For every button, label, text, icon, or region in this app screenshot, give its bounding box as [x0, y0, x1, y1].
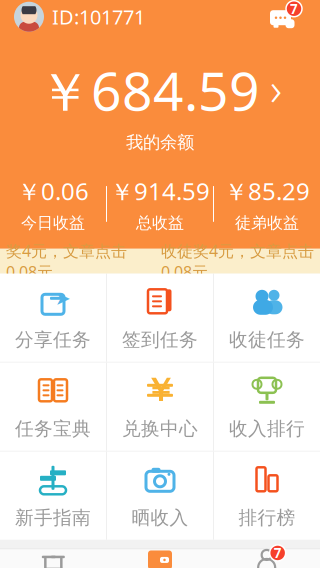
staticText: 总收益: [136, 213, 184, 233]
staticText: ￥: [144, 371, 176, 410]
button[interactable]: ￥85.29: [214, 165, 320, 243]
button[interactable]: 首页: [0, 549, 107, 568]
staticText: 收徒奖4元，文章点击0.08元: [161, 240, 314, 282]
staticText: 7: [290, 0, 298, 18]
button[interactable]: 排行榜: [214, 452, 320, 540]
staticText: 收徒任务: [229, 328, 305, 351]
staticText: ￥684.59: [38, 55, 260, 126]
staticText: ￥0.06: [17, 175, 89, 207]
staticText: 签到任务: [122, 328, 198, 351]
staticText: 排行榜: [238, 506, 295, 529]
button[interactable]: ➤: [0, 274, 106, 362]
button[interactable]: ￥0.06: [0, 165, 106, 243]
button[interactable]: 新手指南: [0, 452, 106, 540]
button[interactable]: 消息: [262, 0, 306, 37]
staticText: ➤: [55, 288, 71, 309]
staticText: 新手指南: [15, 506, 91, 529]
staticText: 收入排行: [229, 417, 305, 440]
staticText: ￥85.29: [224, 175, 310, 207]
button[interactable]: 收徒任务: [214, 274, 320, 362]
staticText: 任务宝典: [15, 417, 91, 440]
staticText: ￥914.59: [110, 175, 210, 207]
staticText: 兑换中心: [122, 417, 198, 440]
staticText: ›: [270, 58, 282, 118]
staticText: 晒收入: [131, 506, 188, 529]
button[interactable]: 签到任务: [107, 274, 213, 362]
staticText: 我的余额: [126, 132, 194, 153]
staticText: 奖4元，文章点击0.08元: [6, 240, 127, 282]
staticText: 徒弟收益: [235, 213, 299, 233]
button[interactable]: ￥: [107, 363, 213, 451]
staticText: 分享任务: [15, 328, 91, 351]
button[interactable]: 任务宝典: [0, 363, 106, 451]
staticText: 今日收益: [21, 213, 85, 233]
staticText: 7: [274, 544, 282, 562]
button[interactable]: 收入排行: [214, 363, 320, 451]
button[interactable]: ￥914.59: [107, 165, 213, 243]
button[interactable]: 晒收入: [107, 452, 213, 540]
button[interactable]: 7: [213, 549, 320, 568]
button[interactable]: ￥684.59: [0, 39, 320, 165]
button[interactable]: ID:101771: [14, 0, 145, 36]
staticText: ID:101771: [52, 3, 145, 30]
button[interactable]: 收益: [107, 549, 213, 568]
